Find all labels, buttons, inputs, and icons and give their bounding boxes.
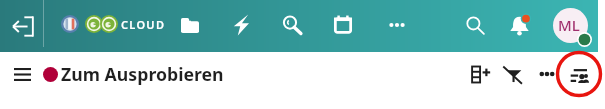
staticText: CLOUD (121, 17, 166, 32)
button[interactable]: Notifications (507, 13, 531, 37)
button[interactable]: Exit (10, 14, 34, 38)
button[interactable]: More options (535, 62, 559, 86)
button[interactable]: Activity list (568, 64, 588, 84)
button[interactable]: More apps (385, 13, 409, 37)
button[interactable]: Files (178, 13, 202, 37)
button[interactable]: Search (463, 13, 487, 37)
button[interactable]: Account (553, 8, 588, 43)
staticText: Zum Ausprobieren (61, 62, 224, 86)
button[interactable]: Activity (229, 13, 253, 37)
button[interactable]: Smart search (280, 13, 304, 37)
staticText: ML (558, 15, 580, 35)
button[interactable]: Clear filter (500, 62, 524, 86)
button[interactable]: Add row (468, 62, 492, 86)
button[interactable]: Calendar (331, 13, 355, 37)
button[interactable]: Menu (10, 62, 34, 86)
